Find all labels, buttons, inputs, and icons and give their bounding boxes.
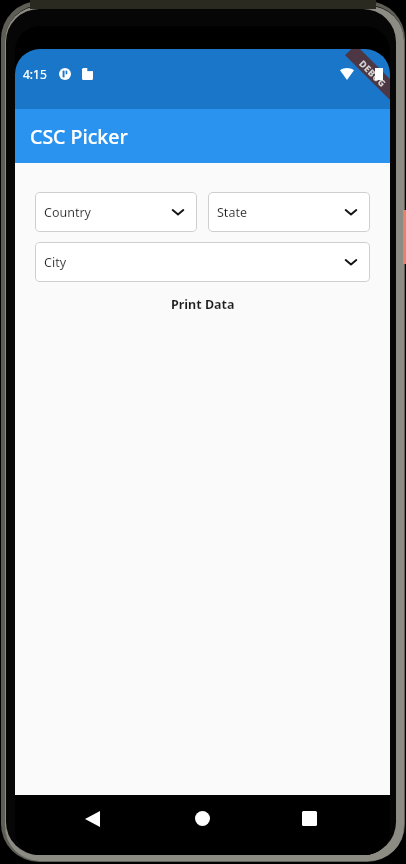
staticText: City <box>44 254 67 271</box>
button[interactable]: State <box>208 192 370 232</box>
button[interactable]: Print Data <box>171 296 235 313</box>
button[interactable]: Back <box>77 803 108 834</box>
staticText: DEBUG <box>357 57 389 89</box>
button[interactable]: City <box>35 242 370 282</box>
staticText: CSC Picker <box>30 123 128 150</box>
button[interactable]: Home <box>187 803 218 834</box>
button[interactable]: Recent apps <box>294 803 325 834</box>
staticText: State <box>217 204 247 221</box>
staticText: 4:15 <box>23 66 47 82</box>
staticText: Country <box>44 204 91 221</box>
button[interactable]: Country <box>35 192 197 232</box>
